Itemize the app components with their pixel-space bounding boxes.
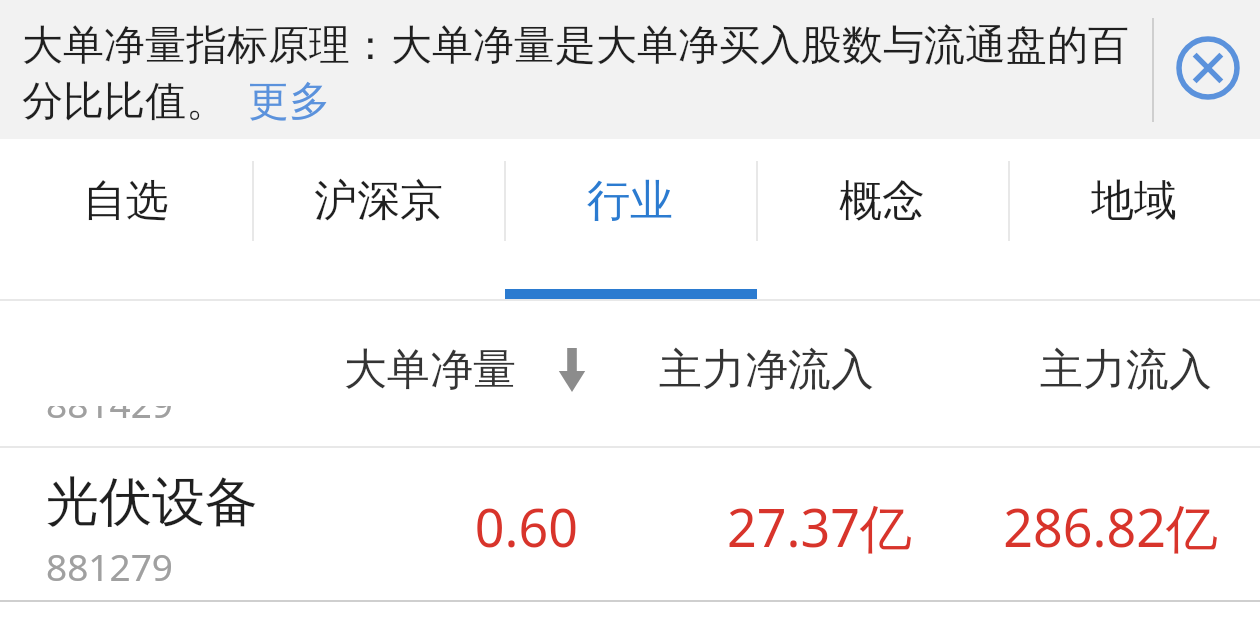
staticText: 主力净流入 [659, 343, 874, 397]
staticText: 自选 [83, 174, 169, 228]
button[interactable]: 行业 [504, 139, 756, 263]
staticText: 大单净量 [344, 343, 516, 397]
staticText: 881429 [46, 406, 173, 418]
staticText: 881279 [46, 541, 173, 591]
button[interactable]: 沪深京 [252, 139, 504, 263]
staticText: 27.37亿 [628, 491, 912, 562]
staticText: 主力流入 [1040, 343, 1212, 397]
button[interactable]: 大单净量指标原理：大单净量是大单净买入股数与流通盘的百分比比值。 更多 [22, 20, 1134, 128]
button[interactable]: 关闭 [1170, 30, 1246, 106]
staticText: 沪深京 [314, 174, 443, 228]
staticText: 概念 [839, 174, 925, 228]
button[interactable]: 光伏设备 [0, 448, 1260, 600]
staticText: 0.60 [320, 491, 578, 562]
staticText: 286.82亿 [940, 491, 1218, 562]
button[interactable]: 概念 [756, 139, 1008, 263]
staticText: 行业 [587, 174, 673, 228]
button[interactable]: 自选 [0, 139, 252, 263]
staticText: 地域 [1091, 174, 1177, 228]
button[interactable]: 地域 [1008, 139, 1260, 263]
staticText: 光伏设备 [46, 469, 258, 536]
